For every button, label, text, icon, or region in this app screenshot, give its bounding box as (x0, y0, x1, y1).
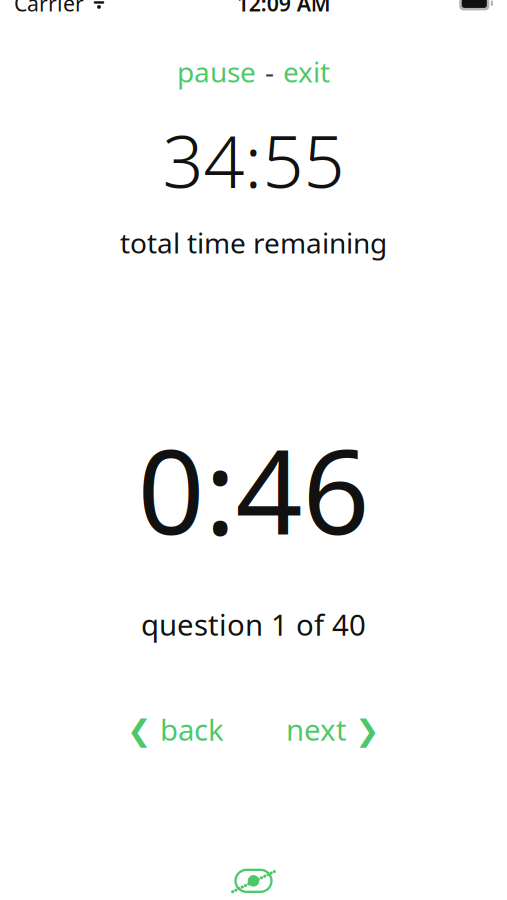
staticText: exit (283, 53, 330, 90)
button[interactable]: next ❯ (286, 710, 380, 749)
button[interactable]: pause (177, 53, 256, 90)
staticText: - (265, 53, 274, 90)
staticText: question 1 of 40 (141, 605, 366, 644)
button[interactable]: ❮ back (127, 710, 224, 749)
button[interactable]: exit (283, 53, 330, 90)
staticText: Carrier (14, 0, 84, 17)
button[interactable]: Hide timer (225, 859, 281, 900)
staticText: next ❯ (286, 710, 380, 749)
staticText: pause (177, 53, 256, 90)
staticText: 0:46 (137, 411, 369, 567)
staticText: 34:55 (162, 112, 344, 208)
staticText: ❮ back (127, 710, 224, 749)
staticText: 12:09 AM (237, 0, 331, 17)
staticText: total time remaining (120, 224, 387, 261)
